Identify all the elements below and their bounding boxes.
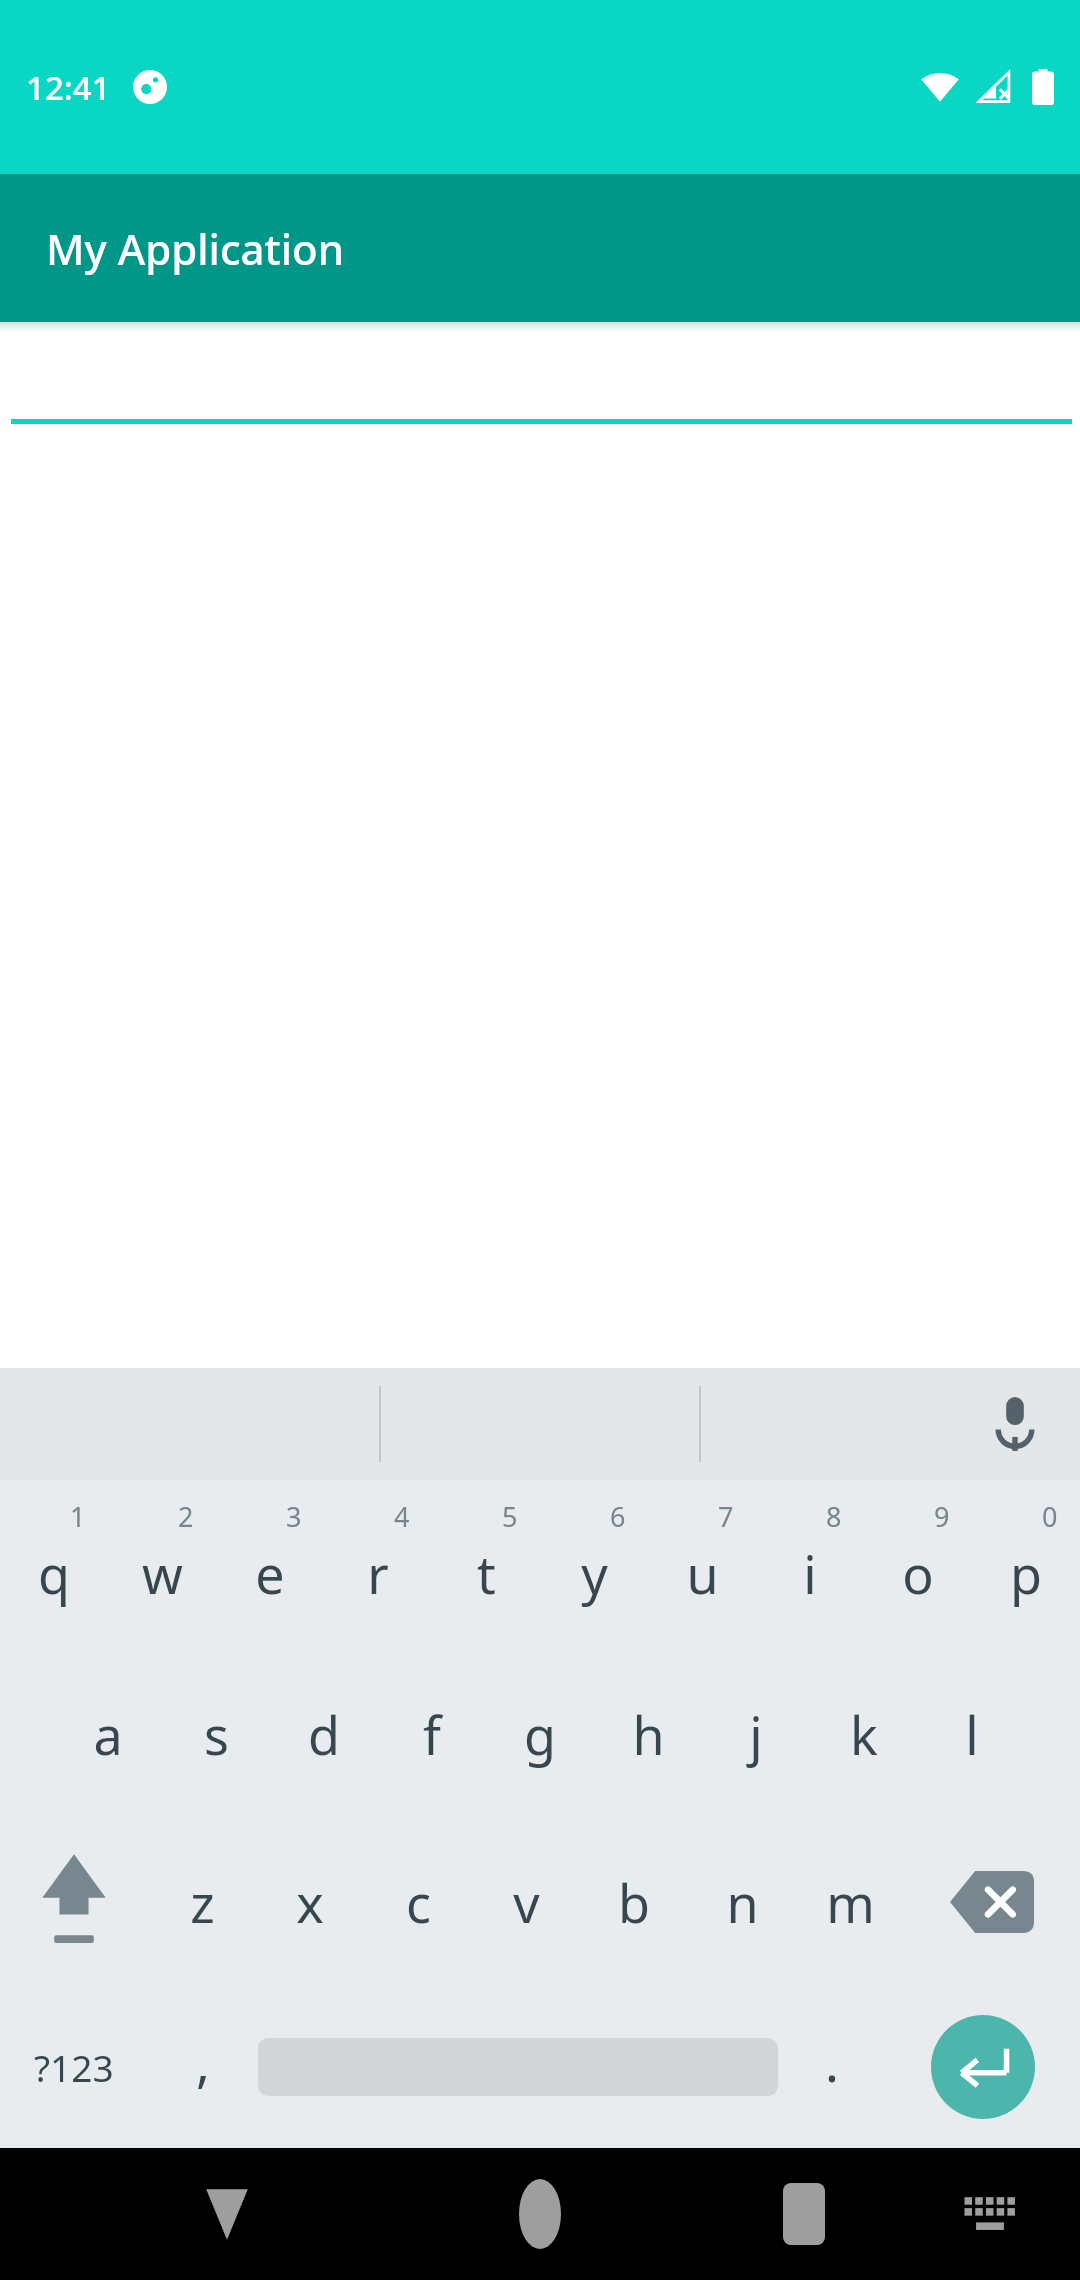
button[interactable]: Voice input [972,1381,1058,1467]
button[interactable]: w [108,1480,216,1650]
staticText: h [632,1699,665,1770]
button[interactable]: y [540,1480,648,1650]
button[interactable]: x [256,1818,364,1986]
button[interactable]: v [472,1818,580,1986]
button[interactable]: n [688,1818,796,1986]
button[interactable]: g [486,1650,594,1818]
staticText: 8 [826,1498,842,1535]
button[interactable] [0,322,1080,432]
staticText: 9 [934,1498,950,1535]
staticText: 1 [70,1498,86,1535]
staticText: r [367,1538,389,1609]
staticText: w [142,1538,183,1609]
button[interactable]: h [594,1650,702,1818]
button[interactable]: r [324,1480,432,1650]
button[interactable]: Shift [0,1818,148,1986]
button[interactable]: u [648,1480,756,1650]
staticText: k [850,1699,878,1770]
button[interactable]: Recent apps [744,2154,864,2274]
staticText: g [524,1699,556,1770]
staticText: i [803,1538,817,1609]
staticText: f [423,1699,441,1770]
button[interactable]: m [796,1818,904,1986]
button[interactable]: . [778,1986,886,2148]
button[interactable]: l [918,1650,1026,1818]
staticText: 7 [718,1498,734,1535]
button[interactable]: i [756,1480,864,1650]
staticText: q [38,1538,70,1609]
button[interactable]: ?123 [0,1986,148,2148]
button[interactable]: t [432,1480,540,1650]
staticText: j [749,1699,763,1770]
button[interactable]: p [972,1480,1080,1650]
staticText: 5 [502,1498,518,1535]
staticText: a [93,1699,123,1770]
button[interactable]: Switch keyboard [940,2164,1040,2264]
staticText: u [686,1538,719,1609]
button[interactable]: e [216,1480,324,1650]
button[interactable]: a [54,1650,162,1818]
staticText: 12:41 [26,65,111,110]
staticText: 2 [178,1498,194,1535]
staticText: y [581,1538,608,1609]
staticText: b [618,1867,650,1938]
staticText: n [726,1867,759,1938]
staticText: o [902,1538,934,1609]
button[interactable]: Enter [931,2015,1035,2119]
staticText: d [308,1699,340,1770]
button[interactable]: f [378,1650,486,1818]
staticText: l [965,1699,979,1770]
button[interactable]: k [810,1650,918,1818]
staticText: e [255,1538,285,1609]
button[interactable]: s [162,1650,270,1818]
staticText: 3 [286,1498,302,1535]
button[interactable]: Backspace [904,1818,1080,1986]
staticText: z [190,1867,215,1938]
staticText: ?123 [34,2042,114,2092]
button[interactable]: o [864,1480,972,1650]
button[interactable]: b [580,1818,688,1986]
staticText: x [296,1867,324,1938]
button[interactable]: d [270,1650,378,1818]
staticText: . [825,2026,839,2097]
button[interactable]: c [364,1818,472,1986]
staticText: 0 [1042,1498,1058,1535]
staticText: t [477,1538,496,1609]
button[interactable]: q [0,1480,108,1650]
button[interactable]: Home [480,2154,600,2274]
button[interactable]: j [702,1650,810,1818]
staticText: 4 [394,1498,410,1535]
staticText: c [406,1867,431,1938]
staticText: p [1010,1538,1042,1609]
staticText: , [196,2026,210,2097]
staticText: 6 [610,1498,626,1535]
staticText: v [513,1867,540,1938]
button[interactable]: Hide keyboard [167,2148,287,2280]
staticText: s [204,1699,229,1770]
staticText: My Application [46,220,344,277]
button[interactable]: , [148,1986,258,2148]
button[interactable]: z [148,1818,256,1986]
staticText: m [826,1867,875,1938]
